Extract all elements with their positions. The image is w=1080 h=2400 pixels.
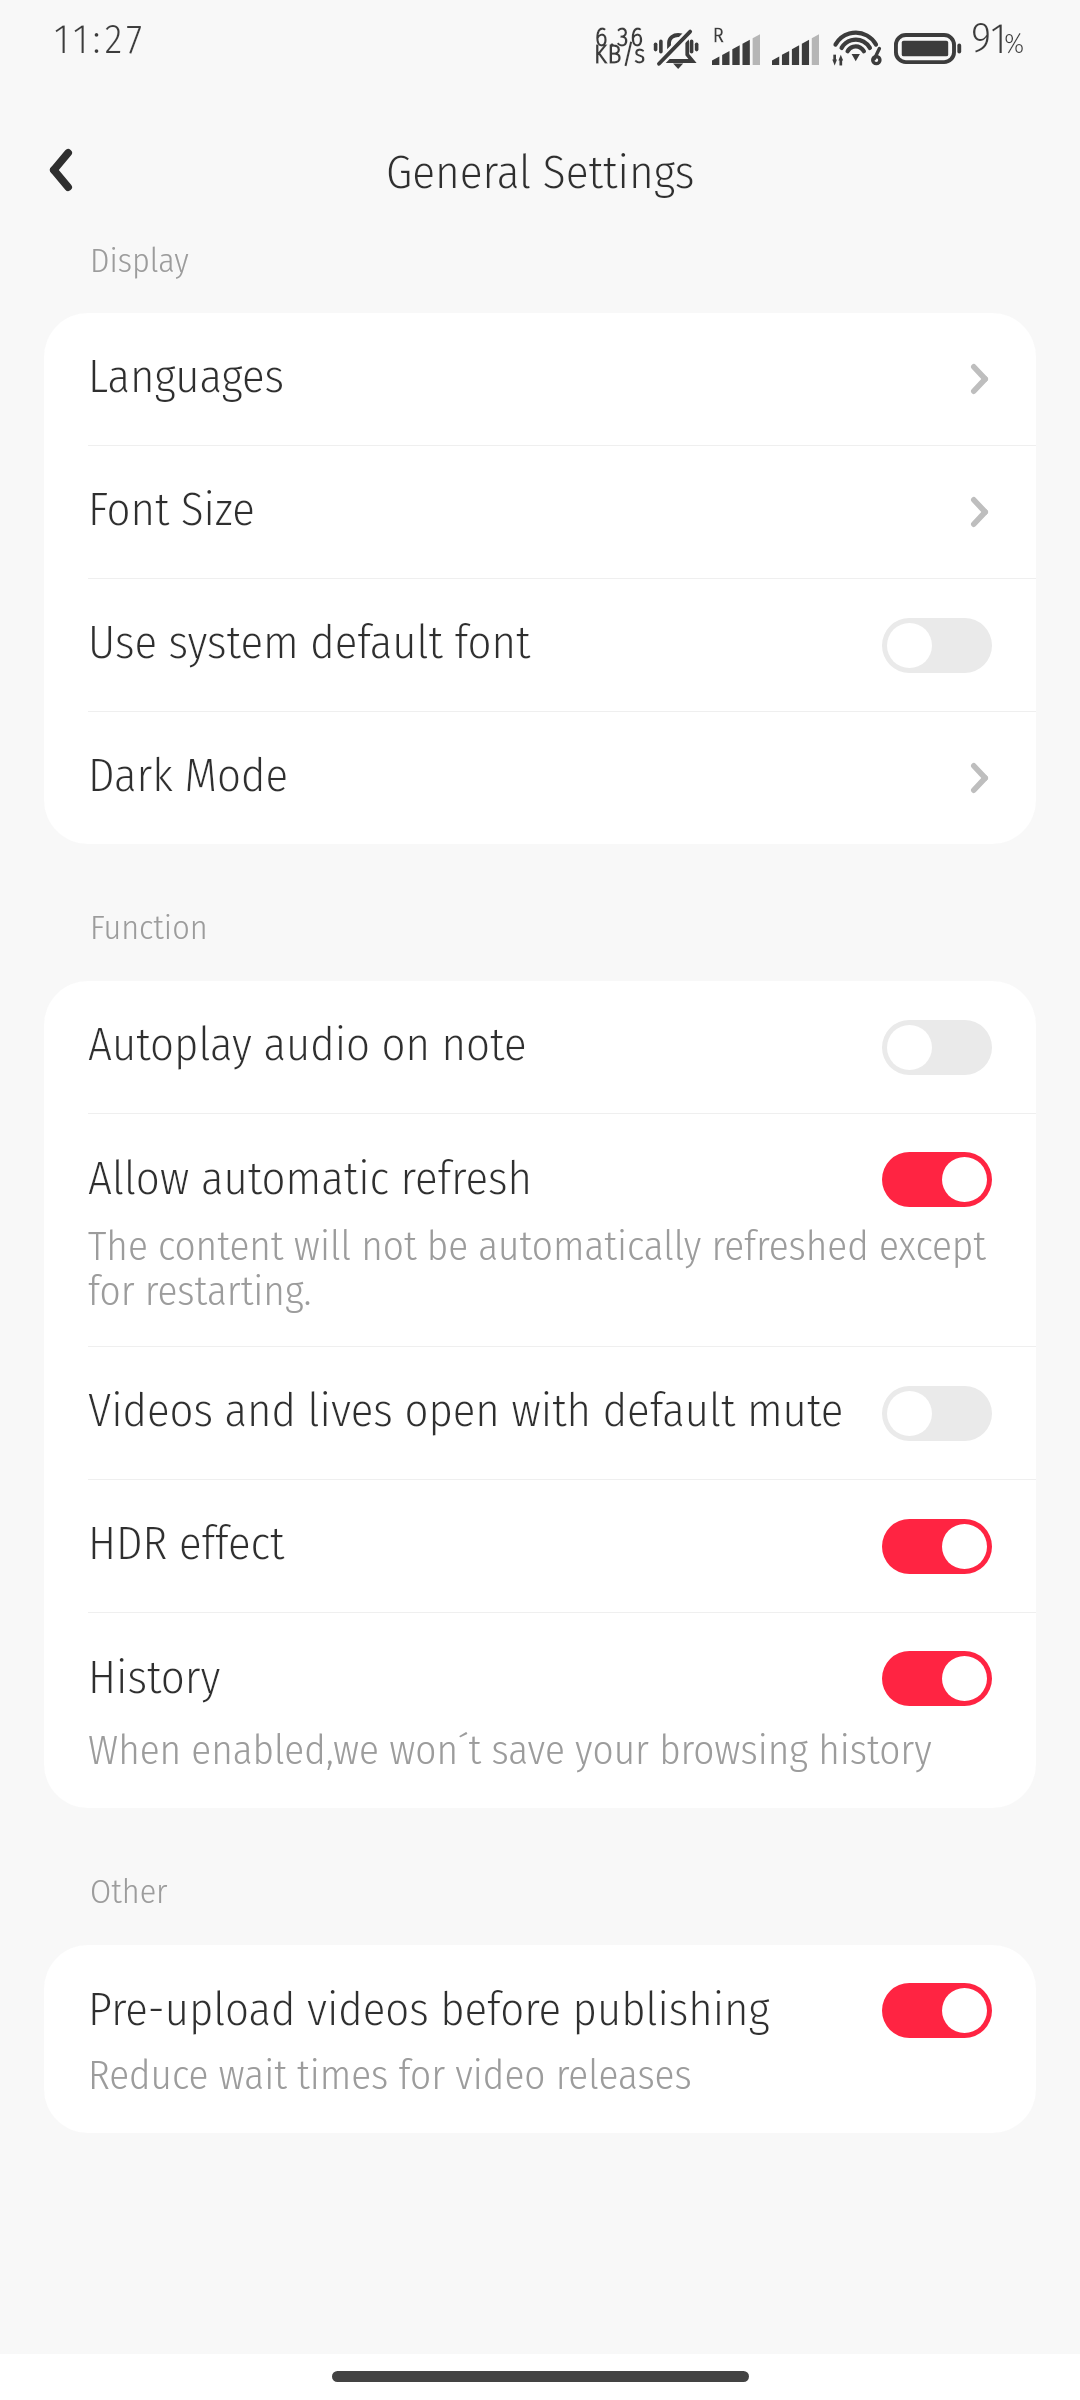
staticText: When enabled,we won´t save your browsing… bbox=[88, 1726, 932, 1775]
staticText: Videos and lives open with default mute bbox=[88, 1383, 882, 1439]
staticText: History bbox=[88, 1650, 882, 1706]
staticText: Autoplay audio on note bbox=[88, 1017, 882, 1073]
staticText: Reduce wait times for video releases bbox=[88, 2051, 692, 2100]
button[interactable]: Dark Mode bbox=[44, 712, 1036, 844]
button[interactable]: Languages bbox=[44, 313, 1036, 445]
staticText: Allow automatic refresh bbox=[88, 1151, 882, 1207]
staticText: Dark Mode bbox=[88, 748, 971, 804]
staticText: 11:27 bbox=[54, 15, 147, 64]
staticText: KB/s bbox=[594, 39, 646, 70]
staticText: % bbox=[1004, 27, 1025, 61]
staticText: General Settings bbox=[386, 144, 695, 200]
staticText: Pre-upload videos before publishing bbox=[88, 1982, 882, 2038]
button[interactable]: Pre-upload videos before publishing bbox=[44, 1945, 1036, 2133]
button[interactable]: Back bbox=[19, 125, 99, 205]
button[interactable]: Allow automatic refresh bbox=[44, 1114, 1036, 1346]
staticText: Use system default font bbox=[88, 615, 882, 671]
staticText: Languages bbox=[88, 349, 971, 405]
staticText: Other bbox=[90, 1871, 168, 1912]
staticText: Display bbox=[90, 240, 189, 281]
button[interactable]: HDR effect bbox=[44, 1480, 1036, 1612]
staticText: Function bbox=[90, 907, 208, 948]
button[interactable]: Use system default font bbox=[44, 579, 1036, 711]
button[interactable]: Autoplay audio on note bbox=[44, 981, 1036, 1113]
staticText: R bbox=[713, 23, 724, 47]
staticText: 91 bbox=[971, 13, 1007, 65]
staticText: The content will not be automatically re… bbox=[88, 1222, 986, 1316]
button[interactable]: History bbox=[44, 1613, 1036, 1808]
button[interactable]: Font Size bbox=[44, 446, 1036, 578]
button[interactable]: Videos and lives open with default mute bbox=[44, 1347, 1036, 1479]
staticText: HDR effect bbox=[88, 1516, 882, 1572]
staticText: Font Size bbox=[88, 482, 971, 538]
staticText: 6.36 bbox=[595, 22, 646, 53]
